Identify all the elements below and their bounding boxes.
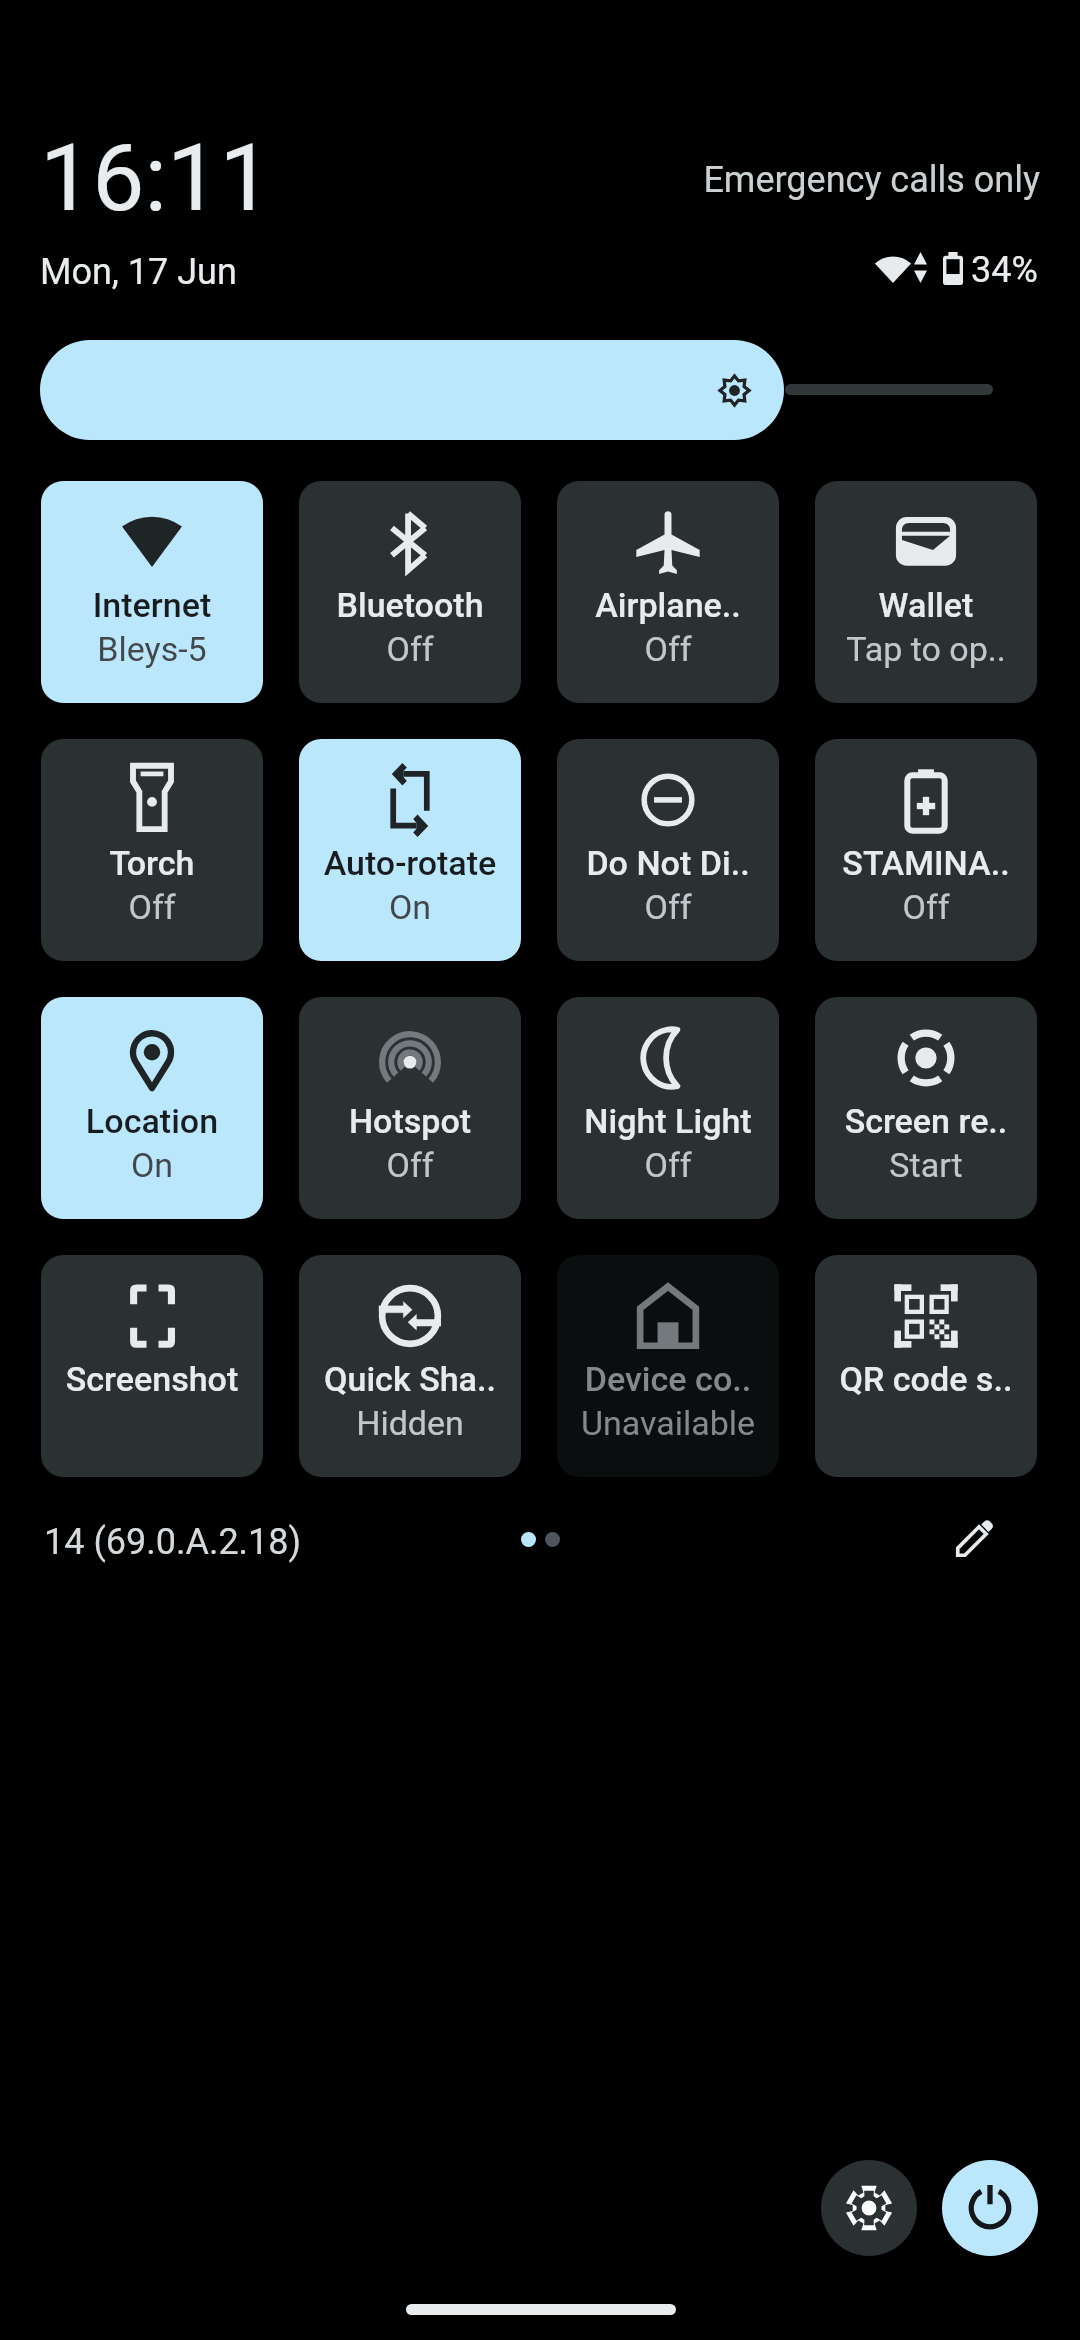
staticText: Off: [557, 1145, 779, 1185]
staticText: STAMINA..: [815, 843, 1037, 883]
button[interactable]: Power: [942, 2160, 1038, 2256]
staticText: Location: [41, 1101, 263, 1141]
button[interactable]: Brightness: [40, 340, 784, 440]
staticText: Hidden: [299, 1403, 521, 1443]
staticText: Bluetooth: [299, 585, 521, 625]
staticText: Unavailable: [557, 1403, 779, 1443]
button[interactable]: Screen re..: [815, 997, 1037, 1219]
staticText: Do Not Di..: [557, 843, 779, 883]
button[interactable]: Auto-rotate: [299, 739, 521, 961]
staticText: Off: [299, 1145, 521, 1185]
staticText: Quick Sha..: [299, 1359, 521, 1399]
button[interactable]: Screenshot: [41, 1255, 263, 1477]
button[interactable]: Night Light: [557, 997, 779, 1219]
button[interactable]: Hotspot: [299, 997, 521, 1219]
button[interactable]: Bluetooth: [299, 481, 521, 703]
button[interactable]: Edit tiles: [935, 1498, 1015, 1578]
staticText: 14 (69.0.A.2.18): [44, 1521, 302, 1563]
staticText: On: [299, 887, 521, 927]
staticText: Start: [815, 1145, 1037, 1185]
staticText: Mon, 17 Jun: [40, 251, 237, 293]
staticText: 34%: [971, 249, 1038, 291]
staticText: Torch: [41, 843, 263, 883]
button[interactable]: Wallet: [815, 481, 1037, 703]
staticText: Off: [557, 629, 779, 669]
staticText: Screenshot: [41, 1359, 263, 1399]
staticText: Emergency calls only: [539, 159, 1040, 201]
button[interactable]: Do Not Di..: [557, 739, 779, 961]
staticText: Bleys-5: [41, 629, 263, 669]
button[interactable]: Device co..: [557, 1255, 779, 1477]
staticText: Hotspot: [299, 1101, 521, 1141]
staticText: QR code s..: [815, 1359, 1037, 1399]
staticText: Night Light: [557, 1101, 779, 1141]
staticText: On: [41, 1145, 263, 1185]
staticText: 16:11: [40, 124, 272, 233]
button[interactable]: Settings: [821, 2160, 917, 2256]
button[interactable]: Internet: [41, 481, 263, 703]
staticText: Off: [557, 887, 779, 927]
staticText: Screen re..: [815, 1101, 1037, 1141]
button[interactable]: STAMINA..: [815, 739, 1037, 961]
staticText: Internet: [41, 585, 263, 625]
staticText: Airplane..: [557, 585, 779, 625]
button[interactable]: Torch: [41, 739, 263, 961]
staticText: Auto-rotate: [299, 843, 521, 883]
button[interactable]: Airplane..: [557, 481, 779, 703]
staticText: Off: [299, 629, 521, 669]
staticText: Off: [815, 887, 1037, 927]
button[interactable]: Location: [41, 997, 263, 1219]
button[interactable]: QR code s..: [815, 1255, 1037, 1477]
button[interactable]: Quick Sha..: [299, 1255, 521, 1477]
staticText: Off: [41, 887, 263, 927]
staticText: Tap to op..: [815, 629, 1037, 669]
staticText: Wallet: [815, 585, 1037, 625]
staticText: Device co..: [557, 1359, 779, 1399]
